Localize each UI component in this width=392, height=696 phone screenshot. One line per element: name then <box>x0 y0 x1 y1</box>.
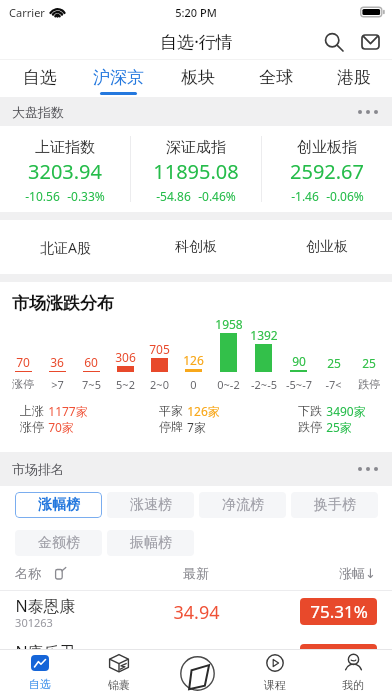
button[interactable]: 板块 <box>158 60 236 97</box>
button[interactable]: 全球 <box>236 60 314 97</box>
staticText: 126 <box>183 352 204 368</box>
staticText: 70家 <box>48 419 74 435</box>
staticText: 金额榜 <box>38 534 80 552</box>
staticText: 11895.08 <box>153 158 239 185</box>
staticText: 最新 <box>183 565 209 581</box>
staticText: >7 <box>51 377 64 392</box>
staticText: 换手榜 <box>314 496 356 514</box>
staticText: 0~-2 <box>217 377 240 392</box>
staticText: 301263 <box>15 615 53 630</box>
staticText: 涨停 <box>12 377 34 391</box>
staticText: 下跌 <box>298 403 322 418</box>
staticText: 涨幅榜 <box>38 496 80 514</box>
staticText: N泰恩康 <box>15 595 76 617</box>
staticText: 1177家 <box>48 403 88 419</box>
staticText: 全球 <box>259 67 293 88</box>
staticText: 跌停 <box>298 419 322 434</box>
button[interactable]: 涨速榜 <box>107 492 194 518</box>
button[interactable]: 自选 <box>0 650 79 696</box>
staticText: 25 <box>327 355 341 371</box>
staticText: -5~-7 <box>286 377 312 392</box>
staticText: 跌停 <box>358 377 380 391</box>
staticText: 3203.94 <box>28 158 102 185</box>
staticText: 5~2 <box>116 377 135 392</box>
staticText: 我的 <box>342 678 364 692</box>
staticText: -2~-5 <box>251 377 277 392</box>
button[interactable]: 课程 <box>236 650 314 696</box>
staticText: 北证A股 <box>40 238 91 257</box>
staticText: Carrier <box>9 5 45 20</box>
button[interactable]: 上证指数 <box>0 126 130 212</box>
staticText: 科创板 <box>175 238 217 256</box>
staticText: 25 <box>362 355 376 371</box>
button[interactable]: 换手榜 <box>291 492 378 518</box>
staticText: -0.33% <box>67 188 105 204</box>
button[interactable]: Trade <box>158 650 236 696</box>
staticText: 涨停 <box>20 419 44 434</box>
staticText: 7家 <box>187 419 206 435</box>
staticText: 自选 <box>29 677 51 691</box>
staticText: -7< <box>325 377 342 392</box>
staticText: -54.86 <box>156 188 191 204</box>
staticText: 126家 <box>187 403 220 419</box>
staticText: 上证指数 <box>35 138 95 157</box>
button[interactable]: 深证成指 <box>131 126 261 212</box>
staticText: 0 <box>190 377 197 392</box>
staticText: N康乐卫 <box>15 641 76 663</box>
staticText: 301367 <box>15 661 53 676</box>
staticText: 创业板 <box>306 238 348 256</box>
staticText: 34.94 <box>173 600 220 625</box>
staticText: 70 <box>16 354 30 370</box>
staticText: 锦囊 <box>108 678 130 692</box>
staticText: 705 <box>149 341 170 357</box>
staticText: 25家 <box>326 419 352 435</box>
staticText: 涨速榜 <box>130 496 172 514</box>
button[interactable]: More options <box>358 110 378 114</box>
button[interactable]: 锦囊 <box>79 650 158 696</box>
staticText: 深证成指 <box>166 138 226 157</box>
button[interactable]: 振幅榜 <box>107 530 194 556</box>
staticText: 沪深京 <box>93 67 144 88</box>
button[interactable]: 沪深京 <box>79 60 158 97</box>
button[interactable]: N康乐卫 <box>0 637 392 683</box>
staticText: 名称 <box>15 565 41 581</box>
staticText: 振幅榜 <box>130 534 172 552</box>
staticText: 7~5 <box>82 377 101 392</box>
button[interactable]: 创业板指 <box>262 126 392 212</box>
staticText: -10.56 <box>25 188 60 204</box>
button[interactable]: 涨幅榜 <box>15 492 102 518</box>
button[interactable]: 北证A股 <box>0 220 130 274</box>
staticText: 75.31% <box>310 600 368 623</box>
button[interactable]: 净流榜 <box>199 492 286 518</box>
staticText: 上涨 <box>20 403 44 418</box>
staticText: 2~0 <box>150 377 169 392</box>
staticText: 1392 <box>250 327 278 343</box>
staticText: 5:20 PM <box>175 5 217 20</box>
staticText: 21.50 <box>173 646 220 671</box>
staticText: 净流榜 <box>222 496 264 514</box>
staticText: 港股 <box>337 67 371 88</box>
staticText: 60.12% <box>310 646 368 669</box>
button[interactable]: Messages <box>354 26 386 58</box>
button[interactable]: 金额榜 <box>15 530 102 556</box>
staticText: 自选 <box>23 67 57 88</box>
button[interactable]: 自选 <box>0 60 79 97</box>
staticText: 涨幅↓ <box>339 565 376 581</box>
button[interactable]: Search <box>318 26 350 58</box>
button[interactable]: N泰恩康 <box>0 591 392 637</box>
staticText: 板块 <box>181 67 215 88</box>
button[interactable]: More options <box>358 467 378 471</box>
staticText: 2592.67 <box>290 158 364 185</box>
button[interactable]: 科创板 <box>130 220 261 274</box>
staticText: 自选·行情 <box>160 30 233 53</box>
button[interactable]: 港股 <box>314 60 392 97</box>
staticText: -0.46% <box>198 188 236 204</box>
staticText: 市场涨跌分布 <box>12 293 114 314</box>
button[interactable]: 创业板 <box>261 220 392 274</box>
staticText: 36 <box>50 354 64 370</box>
button[interactable]: 我的 <box>314 650 392 696</box>
staticText: 60 <box>84 354 98 370</box>
staticText: 创业板指 <box>297 138 357 157</box>
staticText: 停牌 <box>159 419 183 434</box>
staticText: 90 <box>292 353 306 369</box>
